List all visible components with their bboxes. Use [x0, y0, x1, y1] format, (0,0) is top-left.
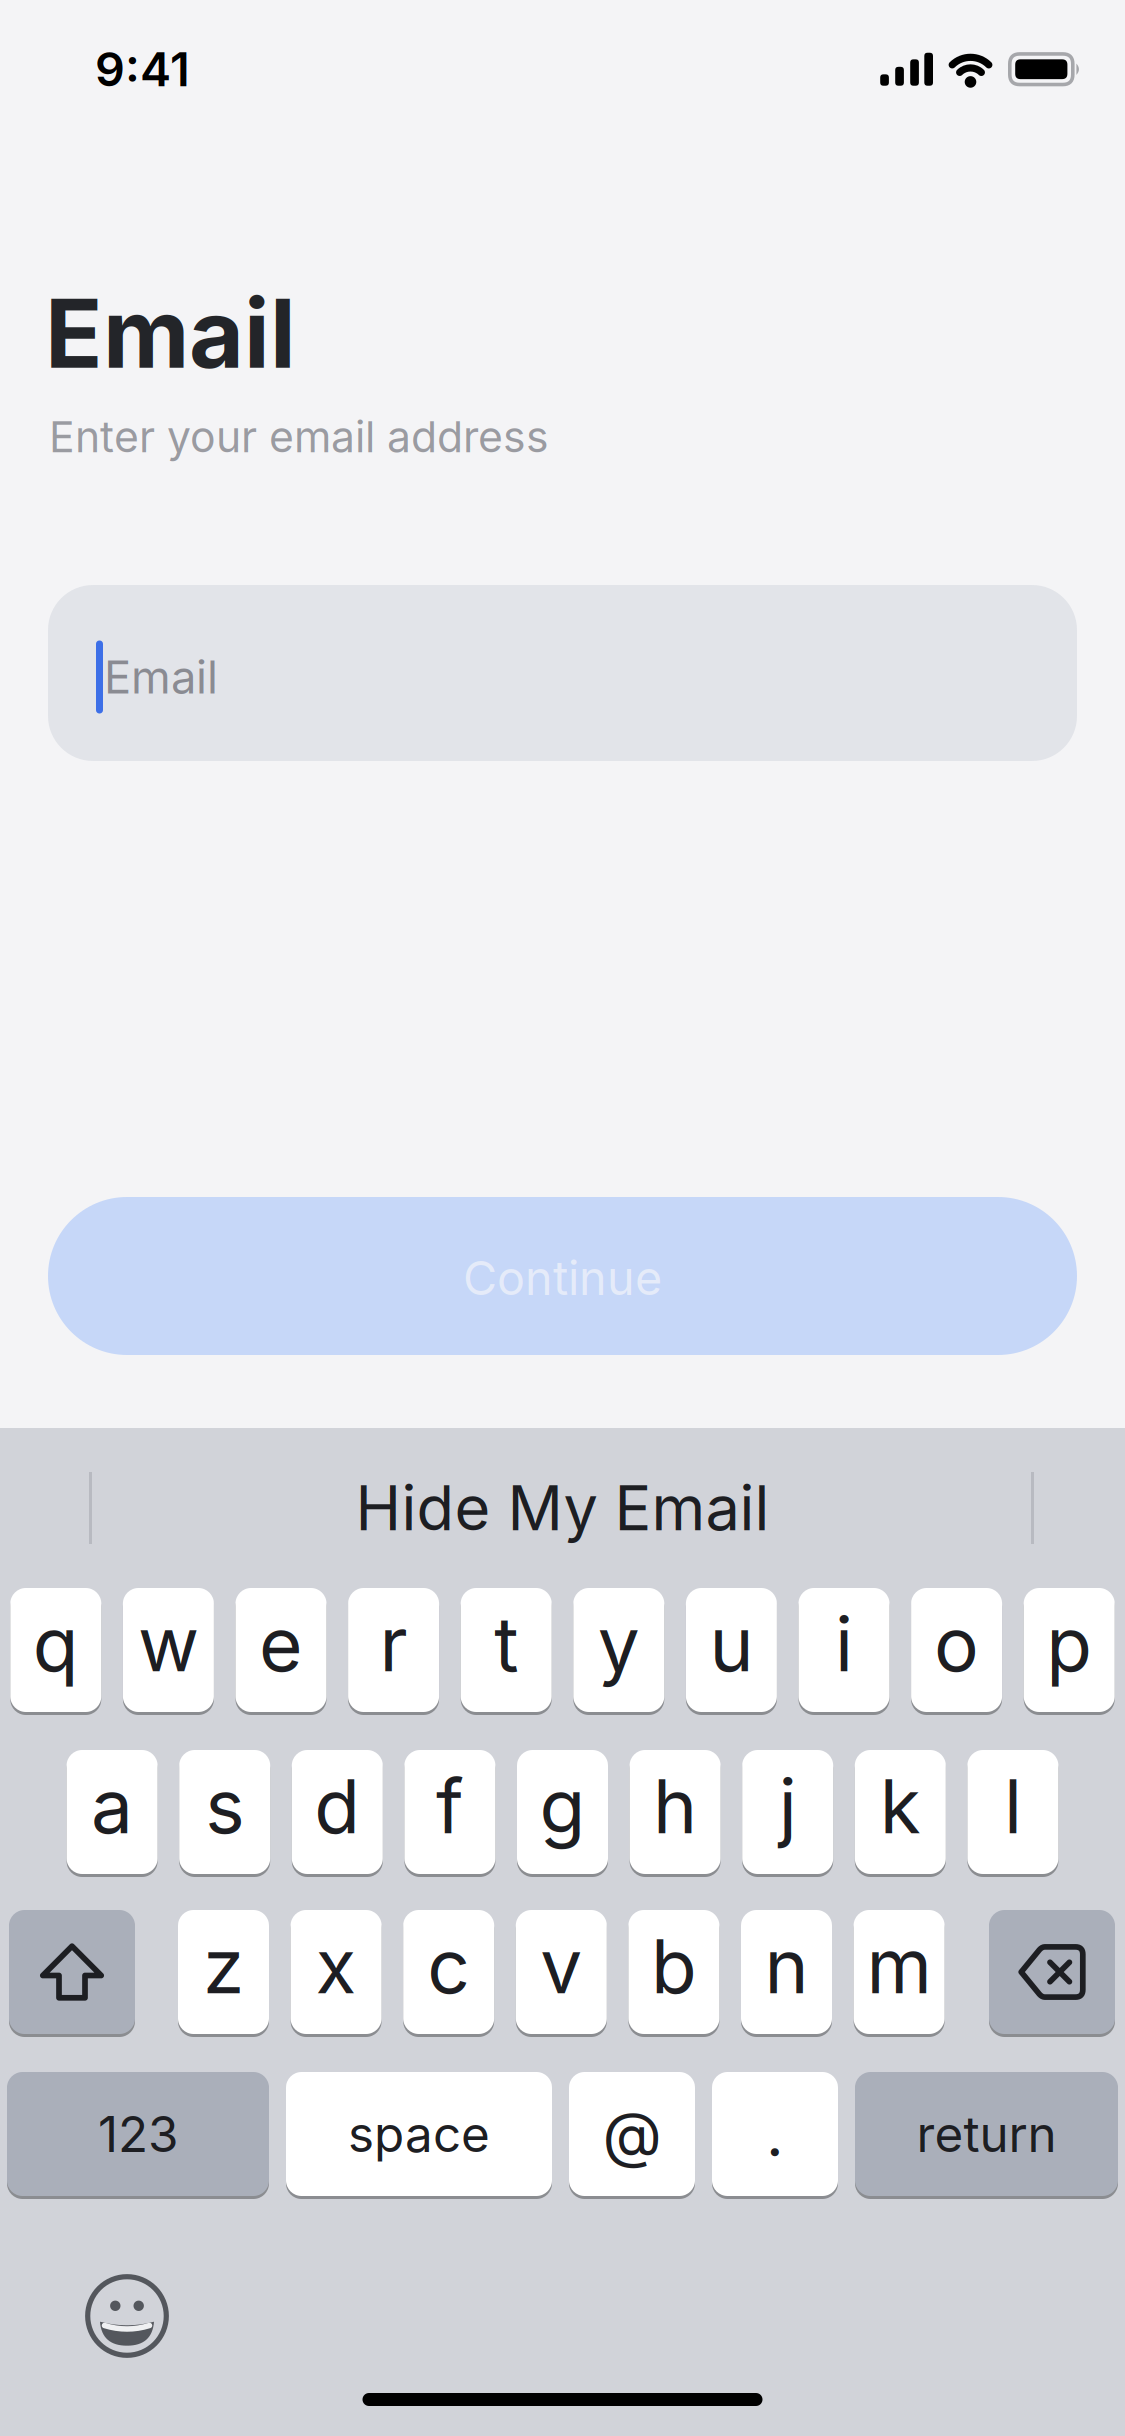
staticText: t: [494, 1599, 518, 1689]
staticText: return: [916, 2104, 1056, 2164]
staticText: l: [1004, 1761, 1022, 1851]
staticText: g: [539, 1761, 585, 1851]
button[interactable]: t: [461, 1588, 552, 1712]
button[interactable]: space: [286, 2072, 552, 2196]
button[interactable]: q: [10, 1588, 101, 1712]
staticText: k: [880, 1761, 921, 1851]
button[interactable]: s: [179, 1750, 270, 1874]
button[interactable]: y: [573, 1588, 664, 1712]
button[interactable]: l: [967, 1750, 1058, 1874]
staticText: j: [779, 1761, 797, 1851]
button[interactable]: i: [798, 1588, 889, 1712]
button[interactable]: n: [741, 1910, 832, 2034]
staticText: .: [766, 2097, 784, 2171]
button[interactable]: j: [742, 1750, 833, 1874]
button[interactable]: e: [235, 1588, 326, 1712]
staticText: q: [33, 1599, 79, 1689]
staticText: w: [138, 1599, 199, 1689]
staticText: z: [203, 1921, 244, 2011]
staticText: space: [348, 2104, 490, 2164]
staticText: Enter your email address: [49, 411, 549, 463]
staticText: h: [653, 1761, 697, 1851]
button[interactable]: x: [291, 1910, 382, 2034]
button[interactable]: a: [67, 1750, 158, 1874]
button[interactable]: Hide My Email: [355, 1471, 769, 1545]
button[interactable]: d: [292, 1750, 383, 1874]
button[interactable]: @: [569, 2072, 695, 2196]
staticText: m: [867, 1921, 932, 2011]
button[interactable]: m: [854, 1910, 945, 2034]
button[interactable]: b: [628, 1910, 719, 2034]
staticText: Continue: [463, 1250, 662, 1306]
button[interactable]: k: [855, 1750, 946, 1874]
staticText: u: [709, 1599, 753, 1689]
staticText: f: [436, 1761, 464, 1851]
staticText: 123: [98, 2104, 178, 2164]
staticText: Email: [45, 276, 296, 390]
staticText: c: [427, 1921, 470, 2011]
button[interactable]: v: [516, 1910, 607, 2034]
button[interactable]: Email: [48, 585, 1077, 761]
button[interactable]: return: [855, 2072, 1118, 2196]
staticText: p: [1046, 1599, 1092, 1689]
staticText: Email: [104, 650, 218, 704]
button[interactable]: r: [348, 1588, 439, 1712]
button[interactable]: 123: [7, 2072, 269, 2196]
button[interactable]: c: [403, 1910, 494, 2034]
button[interactable]: h: [630, 1750, 721, 1874]
button[interactable]: g: [517, 1750, 608, 1874]
button[interactable]: [989, 1910, 1115, 2034]
button[interactable]: f: [404, 1750, 495, 1874]
button[interactable]: .: [712, 2072, 838, 2196]
button[interactable]: o: [911, 1588, 1002, 1712]
staticText: i: [835, 1599, 853, 1689]
staticText: o: [934, 1599, 979, 1689]
staticText: v: [540, 1921, 582, 2011]
button[interactable]: p: [1024, 1588, 1115, 1712]
staticText: @: [602, 2097, 661, 2171]
button[interactable]: w: [123, 1588, 214, 1712]
staticText: Hide My Email: [355, 1471, 769, 1545]
staticText: x: [316, 1921, 357, 2011]
staticText: e: [259, 1599, 303, 1689]
button[interactable]: u: [686, 1588, 777, 1712]
staticText: r: [380, 1599, 408, 1689]
staticText: n: [764, 1921, 808, 2011]
staticText: d: [314, 1761, 360, 1851]
button[interactable]: z: [178, 1910, 269, 2034]
staticText: a: [91, 1761, 133, 1851]
staticText: y: [598, 1599, 640, 1689]
button[interactable]: [9, 1910, 135, 2034]
staticText: b: [651, 1921, 697, 2011]
staticText: s: [205, 1761, 244, 1851]
button[interactable]: Continue: [48, 1197, 1077, 1355]
button[interactable]: [85, 2274, 169, 2358]
staticText: 9:41: [95, 41, 190, 97]
